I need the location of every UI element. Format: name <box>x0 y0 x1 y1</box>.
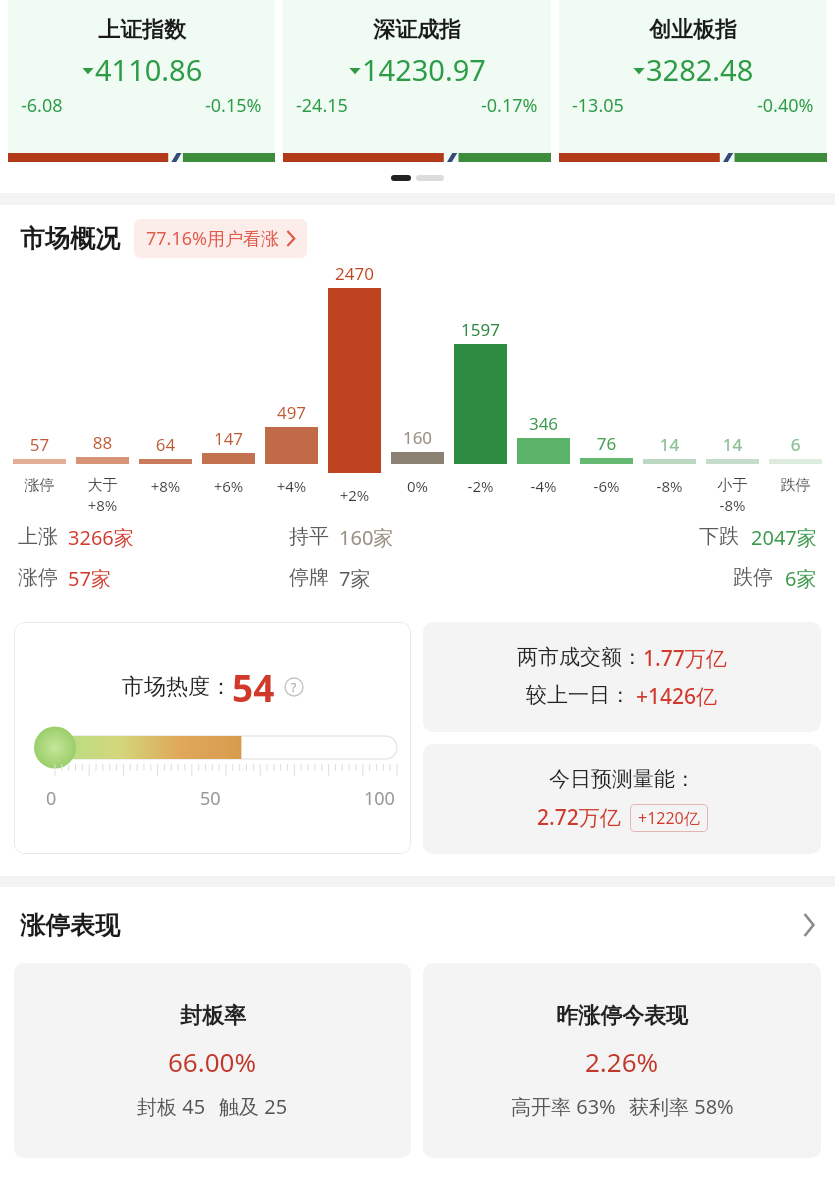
button[interactable]: 市场热度说明 <box>284 677 304 697</box>
staticText: 64 <box>134 433 197 456</box>
staticText: 涨停表现 <box>20 910 120 941</box>
staticText: 0 <box>46 786 57 811</box>
staticText: 147 <box>197 427 260 450</box>
staticText: 0% <box>386 476 449 496</box>
staticText: 2470 <box>323 262 386 285</box>
staticText: 6 <box>764 433 827 456</box>
staticText: 持平 <box>289 524 329 549</box>
staticText: 497 <box>260 401 323 424</box>
staticText: 封板率 <box>180 1002 246 1030</box>
staticText: 涨停 <box>8 476 71 495</box>
staticText: -0.17% <box>481 93 538 118</box>
staticText: 1597 <box>449 318 512 341</box>
staticText: -6.08 <box>21 93 63 118</box>
staticText: 2047家 <box>751 524 817 551</box>
staticText: 7家 <box>339 565 371 592</box>
staticText: 4110.86 <box>95 50 203 89</box>
staticText: 160 <box>386 426 449 449</box>
staticText: +1426亿 <box>636 682 718 711</box>
staticText: 创业板指 <box>649 16 737 44</box>
staticText: 76 <box>575 432 638 455</box>
button[interactable]: 涨停表现 <box>0 887 835 963</box>
staticText: -4% <box>512 476 575 496</box>
staticText: 跌停 <box>764 476 827 495</box>
staticText: 57家 <box>68 565 111 592</box>
staticText: 14 <box>701 433 764 456</box>
staticText: +8% <box>71 495 134 515</box>
staticText: 100 <box>364 786 395 811</box>
staticText: -2% <box>449 476 512 496</box>
staticText: 较上一日： <box>526 682 631 708</box>
staticText: -8% <box>701 495 764 515</box>
staticText: 2.26% <box>585 1044 659 1079</box>
button[interactable]: 深证成指 <box>283 0 551 162</box>
button[interactable]: 市场热度： <box>14 622 411 854</box>
staticText: -6% <box>575 476 638 496</box>
staticText: ? <box>291 679 297 695</box>
button[interactable]: 77.16%用户看涨 <box>134 219 307 258</box>
button[interactable]: 封板率 <box>14 963 411 1158</box>
staticText: 市场概况 <box>20 223 120 254</box>
staticText: 77.16%用户看涨 <box>146 226 279 251</box>
staticText: 深证成指 <box>373 16 461 44</box>
staticText: +8% <box>134 476 197 496</box>
button[interactable]: 创业板指 <box>559 0 827 162</box>
staticText: 小于 <box>701 476 764 495</box>
staticText: 2.72万亿 <box>537 803 621 832</box>
staticText: 346 <box>512 412 575 435</box>
staticText: -24.15 <box>296 93 348 118</box>
staticText: 50 <box>200 786 221 811</box>
staticText: 高开率 63% <box>511 1093 616 1120</box>
staticText: 54 <box>232 662 275 712</box>
staticText: 57 <box>8 433 71 456</box>
staticText: 上证指数 <box>98 16 186 44</box>
staticText: 88 <box>71 431 134 454</box>
button[interactable]: 昨涨停今表现 <box>423 963 821 1158</box>
staticText: 获利率 58% <box>629 1093 734 1120</box>
staticText: 触及 25 <box>219 1093 288 1120</box>
staticText: 今日预测量能： <box>549 766 696 792</box>
staticText: 上涨 <box>18 524 58 549</box>
staticText: +6% <box>197 476 260 496</box>
staticText: 大于 <box>71 476 134 495</box>
staticText: 跌停 <box>733 565 773 590</box>
staticText: 3266家 <box>68 524 134 551</box>
staticText: 停牌 <box>289 565 329 590</box>
staticText: -0.15% <box>205 93 262 118</box>
staticText: 1.77万亿 <box>643 644 727 673</box>
staticText: 昨涨停今表现 <box>556 1002 688 1030</box>
staticText: 下跌 <box>699 524 739 549</box>
staticText: 66.00% <box>168 1044 257 1079</box>
button[interactable]: 上证指数 <box>8 0 275 162</box>
staticText: 市场热度： <box>122 673 232 701</box>
staticText: -8% <box>638 476 701 496</box>
button[interactable]: 两市成交额： <box>423 622 821 732</box>
staticText: 3282.48 <box>646 50 754 89</box>
staticText: +2% <box>323 485 386 505</box>
staticText: +4% <box>260 476 323 496</box>
staticText: 两市成交额： <box>517 644 643 670</box>
staticText: 6家 <box>785 565 817 592</box>
staticText: 封板 45 <box>137 1093 206 1120</box>
staticText: 涨停 <box>18 565 58 590</box>
staticText: 14230.97 <box>362 50 486 89</box>
staticText: -13.05 <box>572 93 624 118</box>
staticText: +1220亿 <box>638 807 700 829</box>
staticText: 160家 <box>339 524 394 551</box>
button[interactable]: 今日预测量能： <box>423 744 821 854</box>
staticText: -0.40% <box>757 93 814 118</box>
staticText: 14 <box>638 433 701 456</box>
other: 查看更多涨停表现 <box>802 914 815 936</box>
